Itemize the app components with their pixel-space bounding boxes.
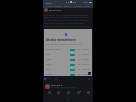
staticText: R$ 1.250,00 — [78, 53, 89, 56]
button[interactable]: Menu — [83, 90, 92, 98]
button[interactable]: agosto — [46, 72, 90, 77]
staticText: Perfil — [84, 5, 90, 8]
staticText: agosto — [46, 73, 53, 76]
staticText: abril — [46, 53, 51, 56]
button[interactable]: Alerta — [73, 90, 82, 98]
button[interactable]: Home — [44, 90, 53, 98]
button[interactable]: Grupos — [74, 4, 82, 8]
staticText: Facebook em reconhecido como uma das mel… — [44, 13, 92, 34]
staticText: Market — [64, 5, 72, 8]
staticText: Videos — [54, 5, 62, 8]
staticText: julho — [46, 68, 51, 71]
button[interactable]: Videos — [54, 4, 62, 8]
staticText: R$ 1.250,00 — [78, 68, 89, 71]
staticText: Veja abaixo os valores disponiveis hoje — [46, 43, 83, 46]
button[interactable]: aposentadoria — [46, 47, 90, 52]
staticText: Marcela B. — [51, 83, 63, 86]
button[interactable]: abril — [46, 52, 90, 57]
button[interactable]: julho — [46, 67, 90, 72]
button[interactable]: Perfil — [83, 4, 91, 8]
staticText: aposentadoria — [46, 48, 61, 51]
button[interactable]: Market — [64, 90, 73, 98]
staticText: 75% — [83, 1, 88, 4]
staticText: R$ 1.250,00 — [78, 63, 89, 66]
button[interactable]: Inicio — [45, 4, 53, 8]
staticText: Jornal Tech — [49, 8, 62, 11]
staticText: 2 h — [49, 11, 53, 12]
staticText: Video — [56, 95, 61, 98]
staticText: Inicio — [46, 5, 52, 8]
staticText: junho — [46, 63, 52, 66]
button[interactable]: junho — [46, 62, 90, 67]
staticText: Parabens pela conquista — [51, 86, 77, 89]
staticText: R$ 1.250,00 — [78, 73, 89, 76]
staticText: maio — [46, 58, 51, 61]
staticText: 142 — [47, 77, 51, 80]
staticText: R$ 1.250,00 — [78, 58, 89, 61]
button[interactable]: maio — [46, 57, 90, 62]
button[interactable]: Market — [64, 4, 72, 8]
staticText: 10:24 — [45, 1, 52, 4]
staticText: R$ 1.250,00 — [78, 48, 89, 51]
staticText: Grupos — [74, 5, 82, 8]
staticText: Receba mensalmente — [46, 38, 77, 42]
button[interactable]: Video — [54, 90, 63, 98]
